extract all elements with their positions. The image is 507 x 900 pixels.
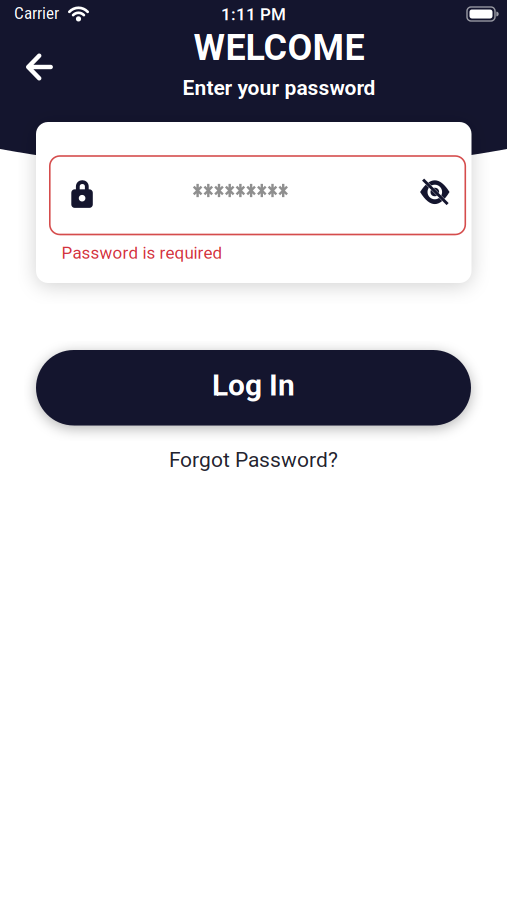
button[interactable]: Forgot Password? xyxy=(169,447,338,472)
staticText: Forgot Password? xyxy=(169,447,338,472)
staticText: Log In xyxy=(212,368,295,403)
staticText: Enter your password xyxy=(182,75,375,100)
button[interactable]: Log In xyxy=(36,350,471,425)
staticText: Carrier xyxy=(14,3,59,23)
button[interactable]: Back xyxy=(17,45,62,88)
staticText: WELCOME xyxy=(193,27,364,69)
staticText: Password is required xyxy=(61,243,222,263)
staticText: 1:11 PM xyxy=(221,4,286,24)
button[interactable]: Show password xyxy=(412,171,458,214)
